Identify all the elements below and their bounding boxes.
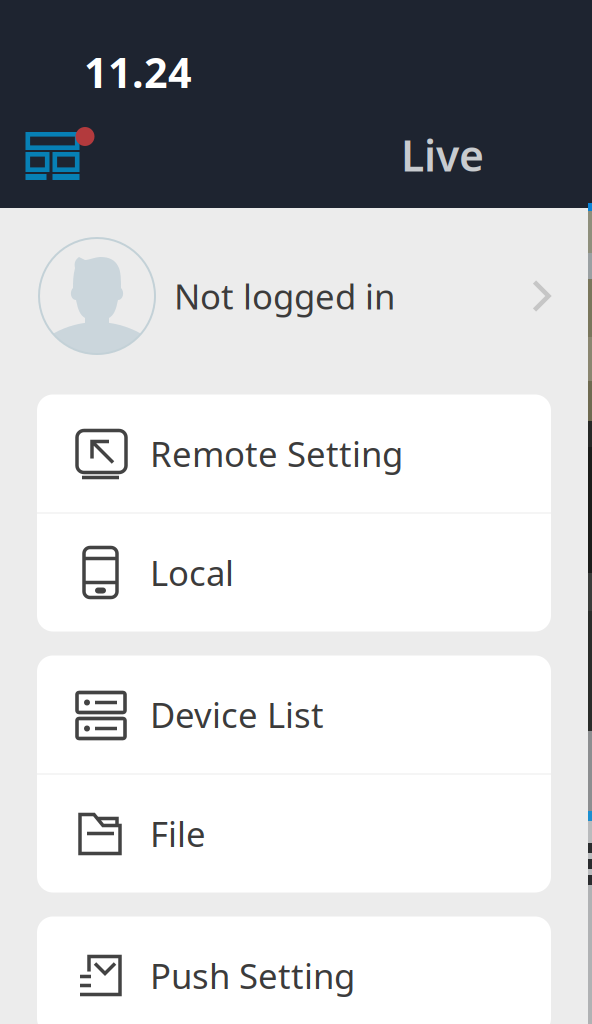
staticText: Remote Setting <box>150 430 403 476</box>
staticText: File <box>150 810 206 856</box>
button[interactable]: Device List <box>37 655 551 773</box>
staticText: Local <box>150 549 234 595</box>
button[interactable]: Push Setting <box>37 916 551 1024</box>
button[interactable]: Layout <box>18 128 87 189</box>
staticText: Device List <box>150 691 324 737</box>
button[interactable]: Remote Setting <box>37 394 551 512</box>
button[interactable]: Not logged in <box>0 197 588 394</box>
staticText: 11.24 <box>84 45 192 99</box>
staticText: Live <box>401 127 484 183</box>
staticText: Push Setting <box>150 952 355 998</box>
button[interactable]: File <box>37 774 551 892</box>
staticText: Not logged in <box>174 273 395 319</box>
button[interactable]: Local <box>37 513 551 631</box>
